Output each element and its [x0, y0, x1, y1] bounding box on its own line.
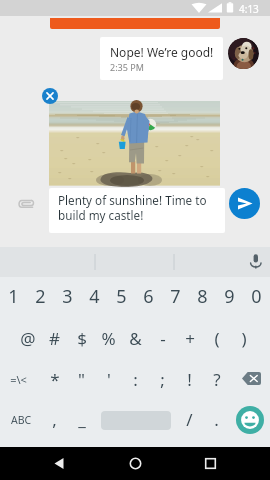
staticText: ;: [160, 368, 165, 390]
staticText: 4: [89, 284, 100, 306]
staticText: 3: [62, 284, 73, 306]
button[interactable]: Home: [120, 448, 151, 479]
button[interactable]: Contact avatar: [228, 38, 259, 69]
staticText: @: [20, 327, 36, 349]
button[interactable]: Backspace: [242, 372, 261, 385]
button[interactable]: $: [68, 327, 95, 349]
staticText: ABC: [11, 413, 32, 427]
staticText: 1: [8, 284, 19, 306]
staticText: 2: [35, 284, 46, 306]
staticText: &: [129, 327, 142, 349]
staticText: +: [185, 327, 195, 349]
button[interactable]: :: [122, 368, 149, 390]
button[interactable]: ': [95, 368, 122, 390]
button[interactable]: ;: [149, 368, 176, 390]
button[interactable]: Voice input: [246, 250, 266, 270]
button[interactable]: [50, 18, 220, 29]
button[interactable]: *: [41, 368, 68, 390]
button[interactable]: &: [122, 327, 149, 349]
staticText: .: [214, 408, 219, 430]
button[interactable]: 0: [243, 284, 270, 306]
button[interactable]: 6: [135, 284, 162, 306]
staticText: Plenty of sunshine! Time to: [58, 192, 207, 208]
staticText: ": [78, 368, 85, 390]
button[interactable]: @: [14, 327, 41, 349]
button[interactable]: Recents: [195, 448, 226, 479]
staticText: ): [241, 327, 247, 349]
staticText: 8: [197, 284, 208, 306]
staticText: %: [101, 327, 116, 349]
staticText: /: [186, 408, 193, 430]
button[interactable]: ,: [41, 408, 68, 430]
button[interactable]: Remove attachment: [42, 88, 58, 104]
staticText: =\<: [10, 372, 27, 387]
staticText: 9: [224, 284, 235, 306]
staticText: 7: [170, 284, 181, 306]
button[interactable]: Attach: [13, 194, 37, 216]
staticText: ': [107, 368, 111, 390]
staticText: _: [78, 408, 86, 430]
button[interactable]: Nope! We’re good!: [100, 37, 223, 80]
button[interactable]: -: [149, 327, 176, 349]
staticText: *: [50, 368, 60, 390]
staticText: !: [187, 368, 192, 390]
staticText: build my castle!: [58, 207, 144, 223]
button[interactable]: Plenty of sunshine! Time to: [49, 188, 225, 233]
staticText: 6: [143, 284, 154, 306]
button[interactable]: Photo attachment: [49, 102, 220, 185]
staticText: 2:35 PM: [110, 61, 144, 73]
button[interactable]: ?: [203, 368, 230, 390]
button[interactable]: 4: [81, 284, 108, 306]
button[interactable]: ABC: [8, 410, 35, 429]
button[interactable]: _: [68, 408, 95, 430]
button[interactable]: !: [176, 368, 203, 390]
button[interactable]: .: [203, 408, 230, 430]
button[interactable]: ): [230, 327, 257, 349]
button[interactable]: ": [68, 368, 95, 390]
staticText: 0: [251, 284, 262, 306]
staticText: #: [49, 327, 60, 349]
button[interactable]: (: [203, 327, 230, 349]
staticText: 4:13: [239, 2, 259, 16]
button[interactable]: Emoji: [236, 406, 264, 434]
button[interactable]: /: [176, 408, 203, 430]
button[interactable]: =\<: [5, 368, 32, 390]
button[interactable]: 3: [54, 284, 81, 306]
button[interactable]: %: [95, 327, 122, 349]
staticText: 5: [116, 284, 127, 306]
button[interactable]: 1: [0, 284, 27, 306]
staticText: (: [214, 327, 220, 349]
staticText: :: [133, 368, 138, 390]
staticText: ,: [52, 408, 57, 430]
button[interactable]: Back: [44, 448, 75, 479]
staticText: -: [160, 327, 166, 349]
button[interactable]: 7: [162, 284, 189, 306]
staticText: $: [77, 327, 87, 349]
button[interactable]: 2: [27, 284, 54, 306]
button[interactable]: 9: [216, 284, 243, 306]
staticText: ?: [213, 368, 221, 390]
button[interactable]: #: [41, 327, 68, 349]
button[interactable]: Send: [229, 188, 260, 219]
button[interactable]: 5: [108, 284, 135, 306]
staticText: Nope! We’re good!: [110, 44, 214, 60]
button[interactable]: +: [176, 327, 203, 349]
button[interactable]: 8: [189, 284, 216, 306]
